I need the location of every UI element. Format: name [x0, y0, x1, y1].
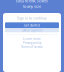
staticText: Terms of service: [21, 45, 43, 49]
button[interactable]: Privacy policy: [23, 41, 41, 45]
staticText: Other options: [22, 28, 42, 32]
staticText: to any size: [23, 3, 41, 9]
staticText: Sign in to continue: [17, 16, 47, 20]
button[interactable]: Terms of service: [21, 45, 43, 49]
staticText: Get started: [24, 23, 40, 27]
staticText: Learn more: [23, 37, 41, 41]
button[interactable]: Learn more: [23, 37, 41, 41]
staticText: Privacy policy: [23, 41, 41, 45]
button[interactable]: Other options: [5, 28, 59, 32]
staticText: Easy to edit, scales: [16, 0, 48, 3]
button[interactable]: Get started: [5, 22, 59, 28]
